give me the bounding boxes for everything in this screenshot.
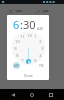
staticText: 12 bbox=[27, 33, 32, 38]
button[interactable]: Home bbox=[26, 89, 38, 100]
staticText: Done bbox=[24, 73, 33, 78]
button[interactable]: Recents bbox=[45, 89, 57, 100]
staticText: 2 bbox=[39, 39, 42, 44]
staticText: 6 bbox=[13, 17, 20, 32]
button[interactable]: PM bbox=[38, 62, 45, 69]
button[interactable]: Done bbox=[22, 72, 35, 79]
staticText: 3 bbox=[41, 46, 44, 51]
staticText: 1 bbox=[34, 34, 37, 39]
button[interactable]: 6 bbox=[13, 17, 20, 32]
button[interactable]: AM bbox=[13, 62, 20, 69]
button[interactable]: Back bbox=[7, 89, 19, 100]
staticText: 10 bbox=[15, 39, 20, 44]
staticText: PM bbox=[39, 64, 44, 68]
staticText: 8 bbox=[16, 53, 19, 58]
staticText: 9 bbox=[14, 46, 17, 51]
staticText: 6 bbox=[28, 60, 31, 65]
staticText: 4 bbox=[39, 53, 42, 58]
staticText: 11 bbox=[20, 34, 25, 39]
staticText: AM bbox=[14, 64, 19, 68]
staticText: AM bbox=[37, 26, 44, 31]
staticText: 30 bbox=[23, 17, 36, 32]
button[interactable]: 30 bbox=[23, 17, 36, 32]
staticText: 5 bbox=[34, 58, 37, 63]
staticText: 7 bbox=[21, 58, 24, 63]
staticText: : bbox=[20, 17, 23, 32]
